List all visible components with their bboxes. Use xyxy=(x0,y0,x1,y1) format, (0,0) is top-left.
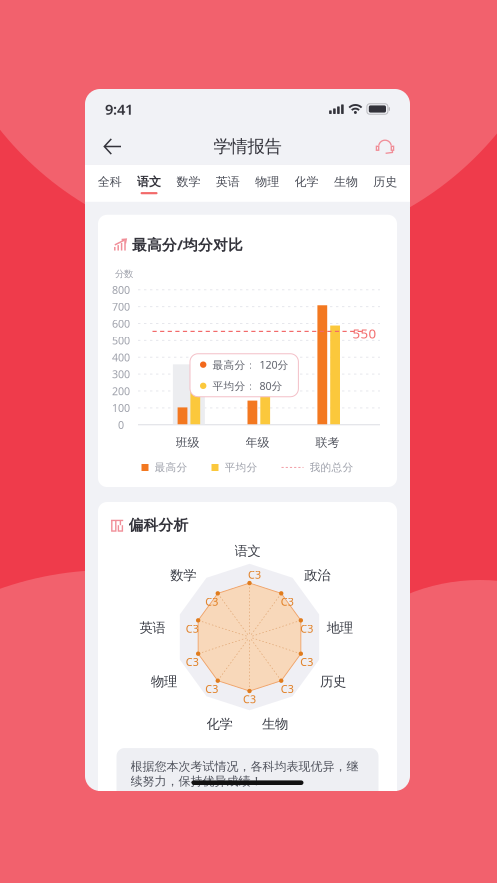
staticText: C3 xyxy=(205,594,218,609)
staticText: 根据您本次考试情况，各科均表现优异，继续努力，保持优异成绩！ xyxy=(130,759,358,788)
staticText: C3 xyxy=(248,567,261,582)
staticText: 班级 xyxy=(176,435,200,450)
button[interactable]: 生物 xyxy=(326,167,366,199)
button[interactable]: 返回 xyxy=(93,129,133,164)
staticText: 生物 xyxy=(334,174,358,189)
staticText: 550 xyxy=(352,324,376,342)
staticText: 数学 xyxy=(176,174,200,189)
staticText: 语文 xyxy=(137,174,161,189)
staticText: 英语 xyxy=(216,174,240,189)
staticText: 语文 xyxy=(235,543,261,559)
staticText: C3 xyxy=(186,655,199,669)
button[interactable]: 化学 xyxy=(287,167,326,199)
staticText: 学情报告 xyxy=(213,136,281,157)
staticText: C3 xyxy=(300,621,313,636)
staticText: 历史 xyxy=(373,174,397,189)
staticText: C3 xyxy=(205,682,218,696)
staticText: C3 xyxy=(300,655,313,669)
staticText: 物理 xyxy=(151,673,177,690)
button[interactable]: 物理 xyxy=(247,167,287,199)
staticText: 最高分/均分对比 xyxy=(132,235,243,254)
staticText: 我的总分 xyxy=(309,461,353,474)
staticText: 9:41 xyxy=(105,99,133,119)
staticText: 200 xyxy=(112,384,130,398)
staticText: 最高分： 120分 xyxy=(212,358,288,372)
staticText: 平均分： 80分 xyxy=(212,379,282,393)
button[interactable]: 数学 xyxy=(169,167,208,199)
staticText: 物理 xyxy=(255,174,279,189)
staticText: 地理 xyxy=(327,620,353,636)
staticText: 100 xyxy=(112,401,130,415)
button[interactable]: 在线客服 xyxy=(368,129,402,164)
staticText: 年级 xyxy=(245,435,269,450)
staticText: 偏科分析 xyxy=(128,516,188,534)
button[interactable]: 语文 xyxy=(129,167,169,199)
staticText: 全科 xyxy=(98,174,122,189)
staticText: 英语 xyxy=(139,620,165,636)
button[interactable]: 历史 xyxy=(366,167,405,199)
staticText: 化学 xyxy=(207,716,233,732)
staticText: C3 xyxy=(281,682,294,696)
staticText: 分数 xyxy=(115,268,133,280)
staticText: 600 xyxy=(112,316,130,331)
staticText: C3 xyxy=(243,692,256,706)
staticText: 800 xyxy=(112,283,130,297)
staticText: 联考 xyxy=(315,435,339,450)
staticText: 生物 xyxy=(262,716,288,732)
staticText: 历史 xyxy=(320,673,346,690)
button[interactable]: 全科 xyxy=(90,167,129,199)
staticText: 最高分 xyxy=(154,461,187,474)
staticText: 500 xyxy=(112,333,130,347)
staticText: 平均分 xyxy=(224,461,257,474)
staticText: C3 xyxy=(186,621,199,636)
button[interactable]: 英语 xyxy=(208,167,247,199)
staticText: 0 xyxy=(118,418,124,432)
staticText: 数学 xyxy=(170,567,196,583)
staticText: 700 xyxy=(112,299,130,314)
staticText: C3 xyxy=(281,594,294,609)
staticText: 政治 xyxy=(304,567,330,583)
staticText: 300 xyxy=(112,367,130,381)
staticText: 400 xyxy=(112,350,130,364)
staticText: 化学 xyxy=(295,174,319,189)
